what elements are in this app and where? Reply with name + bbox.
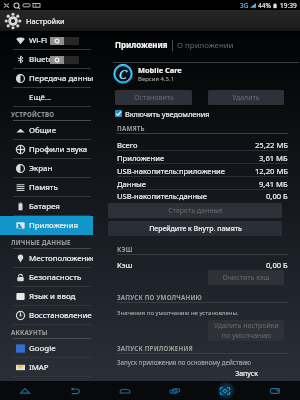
staticText: Включить уведомления xyxy=(125,109,210,119)
staticText: Запуск xyxy=(235,369,258,379)
staticText: Запуск приложения по основному действию xyxy=(117,358,251,366)
staticText: КЭШ xyxy=(117,245,133,253)
button[interactable]: Ещё... xyxy=(0,88,93,107)
button[interactable]: Безопасность xyxy=(0,268,93,287)
staticText: 12,20 МБ xyxy=(255,166,288,176)
button[interactable]: Home xyxy=(0,381,50,400)
staticText: 3,61 МБ xyxy=(259,153,288,163)
staticText: Профили звука xyxy=(29,144,93,155)
staticText: Удалить настройки по умолчанию xyxy=(214,321,279,341)
staticText: Приложения xyxy=(29,220,93,231)
button[interactable]: Стереть данные xyxy=(108,203,282,218)
staticText: Google xyxy=(29,343,93,354)
button[interactable]: Google xyxy=(0,339,93,358)
staticText: Удалить xyxy=(232,93,260,103)
staticText: АККАУНТЫ xyxy=(11,328,48,336)
staticText: 0,00 Б xyxy=(266,191,288,201)
staticText: USB-накопитель:приложение xyxy=(117,166,225,176)
button[interactable]: Память xyxy=(0,178,93,197)
staticText: USB-накопитель:данные xyxy=(117,191,207,201)
button[interactable]: Батарея xyxy=(0,197,93,216)
button[interactable]: О приложении xyxy=(177,40,234,51)
staticText: Безопасность xyxy=(29,272,93,283)
button[interactable]: Запуск xyxy=(208,367,284,381)
staticText: Mobile Care xyxy=(138,65,182,75)
button[interactable]: Передача данных xyxy=(0,69,93,88)
button[interactable]: Screenshot xyxy=(200,381,250,400)
button[interactable] xyxy=(0,377,93,396)
button[interactable]: Bluetooth xyxy=(0,50,93,69)
button[interactable]: Удалить xyxy=(208,90,284,105)
staticText: ЛИЧНЫЕ ДАННЫЕ xyxy=(11,238,71,246)
staticText: ПАМЯТЬ xyxy=(117,124,145,132)
staticText: Wi-Fi xyxy=(29,35,93,46)
staticText: IMAP xyxy=(29,362,93,373)
button[interactable]: Остановить xyxy=(115,90,192,105)
button[interactable]: Back xyxy=(50,381,100,400)
staticText: Настройки xyxy=(26,16,65,26)
staticText: Восстановление xyxy=(29,310,93,321)
button[interactable]: IMAP xyxy=(0,358,93,377)
staticText: Очистить кэш xyxy=(222,273,270,283)
button[interactable]: Экран xyxy=(0,159,93,178)
staticText: УСТРОЙСТВО xyxy=(11,110,55,118)
button[interactable]: Приложения xyxy=(115,40,168,51)
button[interactable]: Wi-Fi xyxy=(0,31,93,50)
staticText: Данные xyxy=(117,179,147,189)
button[interactable]: Включить уведомления xyxy=(115,108,210,119)
staticText: Всего xyxy=(117,140,138,150)
staticText: Экран xyxy=(29,163,93,174)
button[interactable]: Recents xyxy=(150,381,200,400)
staticText: 3G xyxy=(240,1,249,10)
button[interactable]: Удалить настройки по умолчанию xyxy=(208,320,284,341)
button[interactable]: Перейдите к Внутр. память xyxy=(108,221,282,236)
button[interactable]: Overview xyxy=(100,381,150,400)
staticText: Местоположение xyxy=(29,253,93,264)
button[interactable]: Профили звука xyxy=(0,140,93,159)
staticText: Ещё... xyxy=(29,92,93,103)
staticText: Батарея xyxy=(29,201,93,212)
button[interactable]: Язык и ввод xyxy=(0,287,93,306)
staticText: Кэш xyxy=(117,260,133,270)
staticText: Передача данных xyxy=(29,73,93,84)
staticText: Остановить xyxy=(134,93,174,103)
button[interactable]: Местоположение xyxy=(0,249,93,268)
other: Settings xyxy=(5,13,21,29)
staticText: 0,00 Б xyxy=(266,260,288,270)
button[interactable]: Приложения xyxy=(0,216,93,235)
staticText: Память xyxy=(29,182,93,193)
staticText: Bluetooth xyxy=(29,54,93,65)
staticText: Общие xyxy=(29,125,93,136)
button[interactable]: Expand xyxy=(250,381,300,400)
button[interactable]: Восстановление xyxy=(0,306,93,325)
staticText: Перейдите к Внутр. память xyxy=(149,224,242,234)
button[interactable]: Общие xyxy=(0,121,93,140)
staticText: Версия 4.5.1 xyxy=(138,75,175,83)
staticText: ЗАПУСК ПО УМОЛЧАНИЮ xyxy=(117,293,203,301)
staticText: 19:39 xyxy=(280,1,297,10)
button[interactable]: Очистить кэш xyxy=(208,270,284,285)
staticText: Язык и ввод xyxy=(29,291,93,302)
staticText: 25,22 МБ xyxy=(255,140,288,150)
staticText: 9,41 МБ xyxy=(259,179,288,189)
staticText: ЗАПУСК ПРИЛОЖЕНИЯ xyxy=(117,344,193,352)
staticText: C xyxy=(119,65,128,83)
staticText: Стереть данные xyxy=(168,206,223,216)
staticText: Приложение xyxy=(117,153,165,163)
staticText: 44% xyxy=(258,1,271,10)
staticText: Значения по умолчанию не установлены. xyxy=(117,309,239,317)
